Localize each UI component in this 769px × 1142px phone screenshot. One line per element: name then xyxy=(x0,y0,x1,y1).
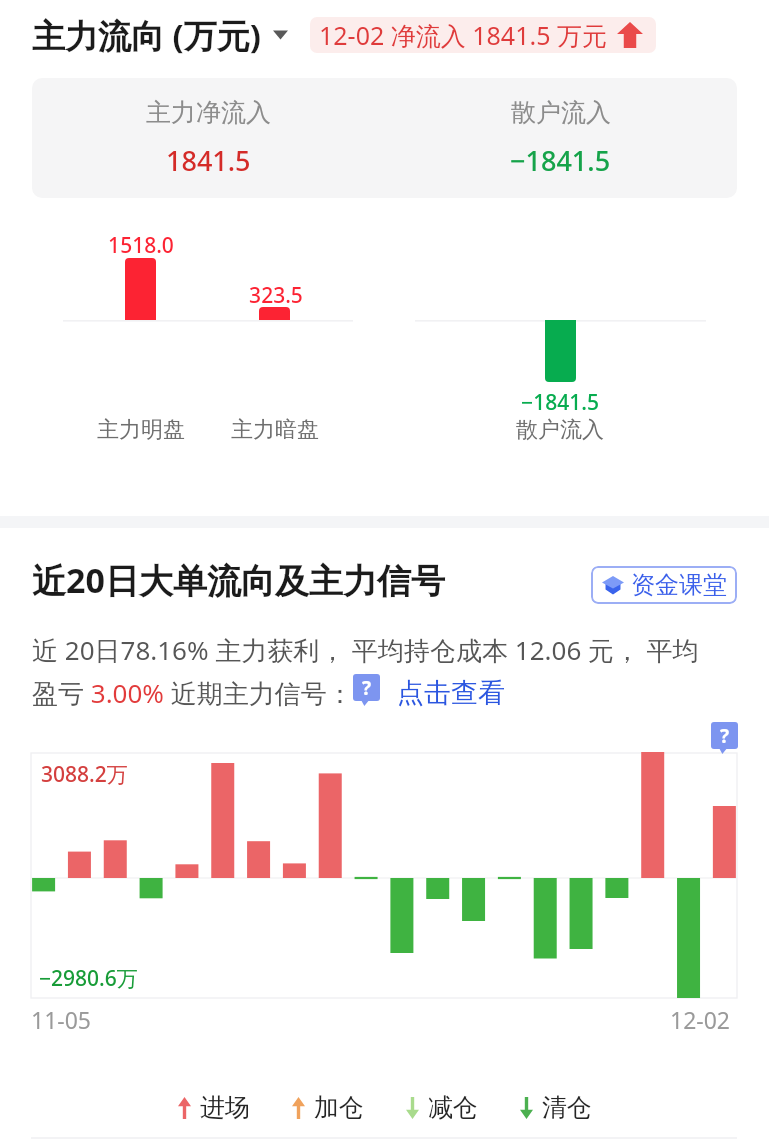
staticText: 1518.0 xyxy=(1,231,281,260)
button[interactable]: 加仓 xyxy=(292,1088,364,1127)
staticText: 清仓 xyxy=(542,1092,592,1123)
button[interactable]: 清仓 xyxy=(520,1088,592,1127)
staticText: 减仓 xyxy=(428,1092,478,1123)
staticText: 散户流入 xyxy=(420,416,700,444)
button[interactable]: 减仓 xyxy=(406,1088,478,1127)
button[interactable]: 说明 xyxy=(353,674,380,706)
staticText: 11-05 xyxy=(31,1004,92,1035)
button[interactable]: 资金课堂 xyxy=(591,566,737,604)
staticText: 近20日大单流向及主力信号 xyxy=(32,557,445,603)
button[interactable]: 点击查看 xyxy=(397,676,505,710)
staticText: 散户流入 xyxy=(511,97,611,128)
staticText: ? xyxy=(720,723,730,749)
button[interactable]: 切换周期 xyxy=(273,25,288,45)
staticText: −2980.6万 xyxy=(39,964,138,993)
staticText: 近 20日78.16% 主力获利， 平均持仓成本 12.06 元， 平均 xyxy=(32,632,699,668)
staticText: −1841.5 xyxy=(510,142,611,179)
staticText: 1841.5 xyxy=(166,142,251,179)
staticText: 盈亏 3.00% 近期主力信号： xyxy=(32,675,353,711)
staticText: 12-02 净流入 1841.5 万元 xyxy=(319,18,607,52)
staticText: 资金课堂 xyxy=(631,570,727,600)
staticText: ? xyxy=(362,675,372,701)
button[interactable]: 说明 xyxy=(711,722,738,754)
button[interactable]: 12-02 净流入 1841.5 万元 xyxy=(310,17,656,53)
staticText: 12-02 xyxy=(670,1004,731,1035)
staticText: 323.5 xyxy=(136,281,416,310)
staticText: 主力明盘 xyxy=(1,416,281,444)
staticText: 主力净流入 xyxy=(146,97,271,128)
staticText: 3088.2万 xyxy=(41,760,128,789)
staticText: −1841.5 xyxy=(420,388,700,417)
staticText: 进场 xyxy=(200,1092,250,1123)
staticText: 加仓 xyxy=(314,1092,364,1123)
staticText: 主力暗盘 xyxy=(135,416,415,444)
button[interactable]: 进场 xyxy=(178,1088,250,1127)
staticText: 主力流向 (万元) xyxy=(32,13,261,58)
